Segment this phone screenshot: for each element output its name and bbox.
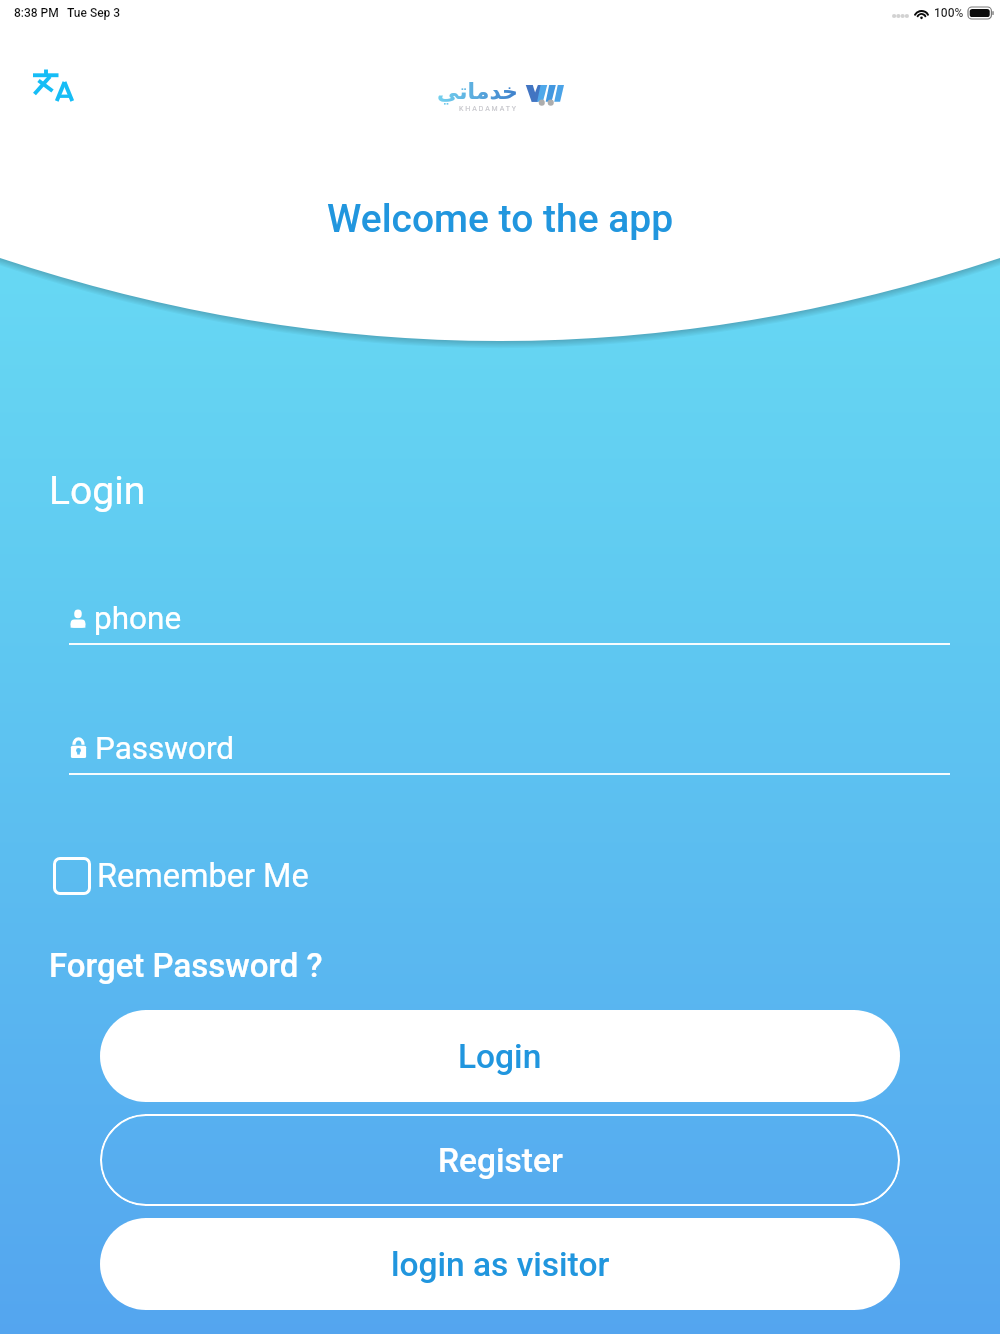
staticText: Tue Sep 3	[67, 6, 121, 20]
button[interactable]: Remember Me	[53, 857, 309, 895]
button[interactable]: login as visitor	[100, 1218, 900, 1310]
staticText: KHADAMATY	[459, 105, 518, 113]
button[interactable]: Register	[100, 1114, 900, 1206]
staticText: Register	[438, 1141, 563, 1180]
staticText: Login	[49, 468, 146, 514]
button[interactable]: Login	[100, 1010, 900, 1102]
staticText: Welcome to the app	[327, 196, 674, 242]
button[interactable]: phone	[69, 600, 950, 645]
staticText: 100%	[934, 6, 964, 20]
staticText: login as visitor	[391, 1245, 610, 1284]
button[interactable]: Change language	[26, 62, 84, 120]
staticText: phone	[94, 600, 182, 637]
staticText: Login	[458, 1037, 542, 1076]
button[interactable]: Password	[69, 730, 950, 775]
staticText: خدماتي	[437, 79, 518, 105]
staticText: 8:38 PM	[14, 6, 59, 20]
staticText: Password	[95, 730, 235, 767]
staticText: Remember Me	[97, 857, 309, 895]
button[interactable]: Forget Password ?	[49, 946, 323, 985]
